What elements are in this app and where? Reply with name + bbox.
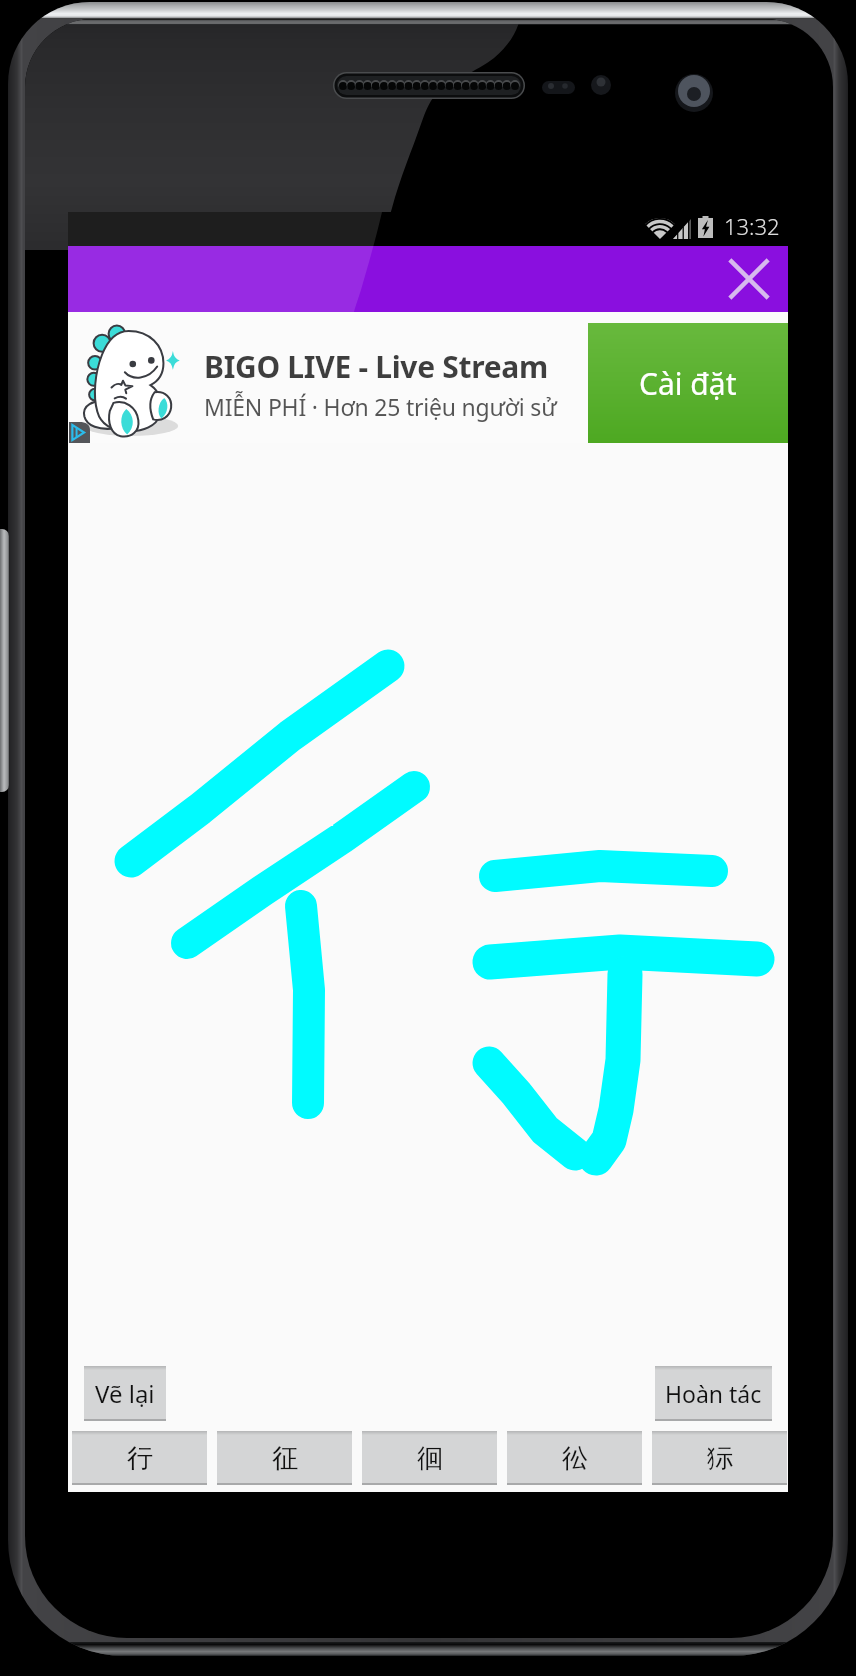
staticText: 彸: [562, 1442, 588, 1475]
button[interactable]: Handwriting input area: [68, 443, 788, 1431]
button[interactable]: Cài đặt: [588, 323, 788, 444]
button[interactable]: Vẽ lại: [84, 1366, 166, 1421]
staticText: Cài đặt: [639, 363, 737, 404]
button[interactable]: 徊: [362, 1431, 497, 1485]
button[interactable]: 狋: [652, 1431, 787, 1485]
button[interactable]: Close ad: [716, 246, 782, 312]
staticText: 征: [272, 1442, 298, 1475]
staticText: 狋: [707, 1442, 733, 1475]
staticText: 行: [127, 1442, 153, 1475]
button[interactable]: 行: [72, 1431, 207, 1485]
button[interactable]: Hoàn tác: [655, 1366, 772, 1421]
button[interactable]: BIGO LIVE - Live Stream: [68, 312, 788, 443]
staticText: BIGO LIVE - Live Stream: [204, 346, 548, 387]
staticText: MIỄN PHÍ · Hơn 25 triệu người sử: [204, 391, 557, 422]
button[interactable]: 征: [217, 1431, 352, 1485]
staticText: 徊: [417, 1442, 443, 1475]
staticText: 13:32: [724, 211, 780, 241]
staticText: Hoàn tác: [665, 1378, 762, 1409]
button[interactable]: 彸: [507, 1431, 642, 1485]
staticText: Vẽ lại: [95, 1377, 155, 1410]
